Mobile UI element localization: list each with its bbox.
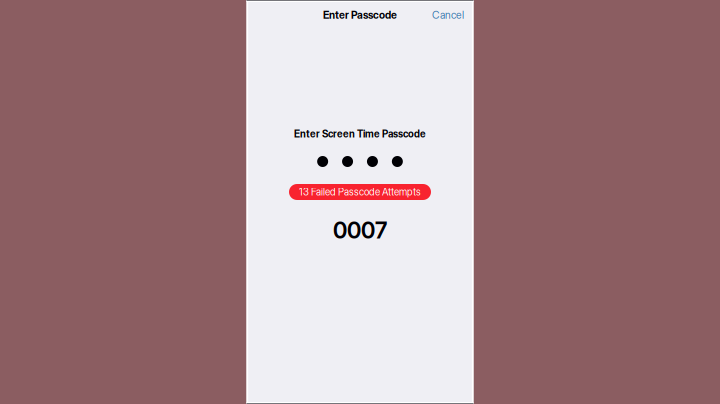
button[interactable]: Cancel — [427, 4, 469, 26]
staticText: Cancel — [432, 9, 464, 21]
staticText: 0007 — [333, 216, 387, 244]
staticText: 13 Failed Passcode Attempts — [299, 186, 421, 198]
staticText: Enter Passcode — [323, 9, 397, 21]
staticText: Enter Screen Time Passcode — [294, 128, 426, 140]
